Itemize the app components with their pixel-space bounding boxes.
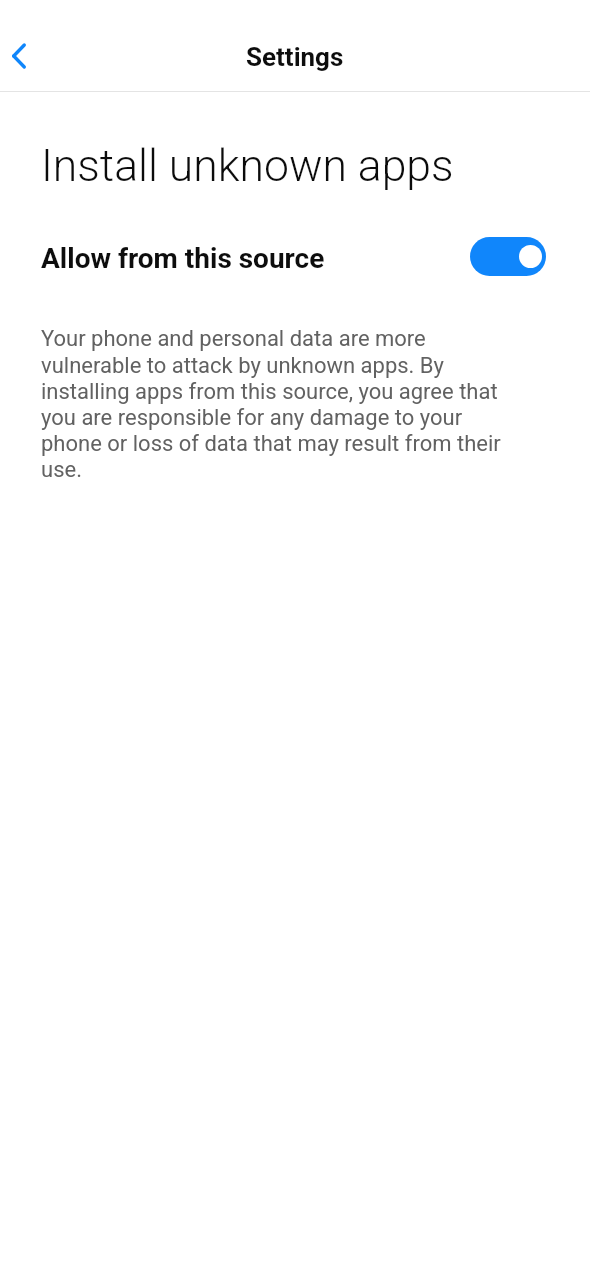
staticText: Allow from this source bbox=[41, 242, 325, 275]
staticText: Your phone and personal data are more vu… bbox=[41, 326, 512, 482]
button[interactable]: Back bbox=[0, 28, 47, 84]
button[interactable]: Allow from this source bbox=[0, 228, 590, 284]
staticText: Settings bbox=[246, 42, 344, 72]
button[interactable]: Allow from this source, on bbox=[470, 237, 546, 276]
staticText: Install unknown apps bbox=[41, 140, 454, 192]
